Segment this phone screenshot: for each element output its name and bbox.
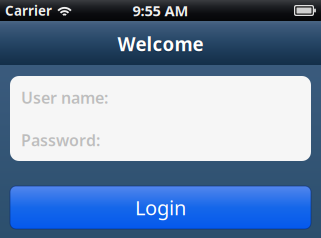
staticText: User name: (21, 87, 108, 108)
button[interactable]: User name: (10, 76, 311, 119)
staticText: Welcome (117, 32, 203, 56)
staticText: 9:55 AM (132, 1, 188, 20)
staticText: Carrier (5, 2, 52, 19)
staticText: Welcome (117, 33, 203, 57)
staticText: Password: (21, 129, 100, 151)
button[interactable]: Password: (10, 119, 311, 161)
button[interactable]: Login (10, 186, 311, 229)
staticText: Login (135, 194, 186, 221)
